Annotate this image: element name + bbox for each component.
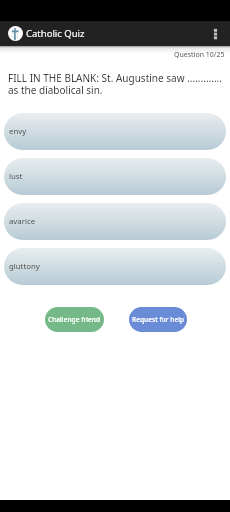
staticText: Request for help bbox=[132, 315, 185, 324]
staticText: Catholic Quiz bbox=[26, 27, 85, 40]
button[interactable]: More options bbox=[203, 21, 228, 46]
button[interactable]: envy bbox=[4, 113, 226, 150]
staticText: Challenge friend bbox=[48, 315, 101, 324]
staticText: gluttony bbox=[9, 261, 40, 272]
button[interactable]: gluttony bbox=[4, 248, 226, 285]
button[interactable]: Challenge friend bbox=[45, 307, 104, 332]
staticText: lust bbox=[9, 171, 23, 182]
button[interactable]: Request for help bbox=[129, 307, 187, 332]
staticText: Question 10/25 bbox=[174, 50, 225, 60]
button[interactable]: lust bbox=[4, 158, 226, 195]
staticText: envy bbox=[9, 126, 27, 137]
staticText: FILL IN THE BLANK: St. Augustine saw ...… bbox=[8, 71, 224, 97]
button[interactable]: avarice bbox=[4, 203, 226, 240]
staticText: avarice bbox=[9, 216, 36, 227]
